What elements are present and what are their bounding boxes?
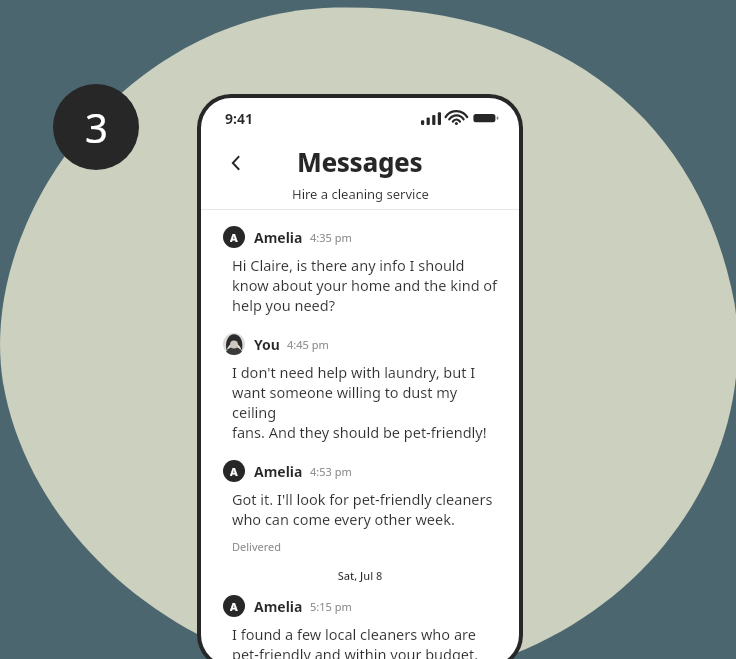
staticText: 4:35 pm: [310, 230, 352, 245]
staticText: Delivered: [232, 539, 281, 554]
staticText: fans. And they should be pet-friendly!: [232, 422, 487, 442]
staticText: Hi Claire, is there any info I should: [232, 255, 465, 275]
staticText: Amelia: [254, 462, 303, 481]
staticText: A: [230, 599, 238, 614]
staticText: You: [254, 335, 280, 354]
staticText: 4:45 pm: [287, 337, 329, 352]
staticText: 3: [85, 100, 108, 154]
staticText: Messages: [297, 144, 423, 179]
button[interactable]: A: [201, 460, 519, 554]
button[interactable]: A: [201, 595, 519, 659]
staticText: Sat, Jul 8: [201, 568, 519, 583]
staticText: 4:53 pm: [310, 464, 352, 479]
staticText: who can come every other week.: [232, 509, 455, 529]
staticText: pet-friendly and within your budget.: [232, 644, 479, 659]
staticText: I don't need help with laundry, but I: [232, 362, 476, 382]
button[interactable]: You: [201, 333, 519, 442]
button[interactable]: A: [201, 226, 519, 315]
staticText: Amelia: [254, 597, 303, 616]
staticText: A: [230, 464, 238, 479]
staticText: I found a few local cleaners who are: [232, 624, 476, 644]
button[interactable]: Step 3: [53, 84, 139, 170]
staticText: want someone willing to dust my ceiling: [232, 382, 501, 422]
staticText: A: [230, 230, 238, 245]
staticText: 5:15 pm: [310, 599, 352, 614]
staticText: know about your home and the kind of: [232, 275, 498, 295]
staticText: 9:41: [225, 109, 253, 128]
staticText: Amelia: [254, 228, 303, 247]
staticText: Hire a cleaning service: [292, 185, 429, 203]
staticText: help you need?: [232, 295, 335, 315]
button[interactable]: Back: [215, 142, 257, 184]
staticText: Got it. I'll look for pet-friendly clean…: [232, 489, 493, 509]
